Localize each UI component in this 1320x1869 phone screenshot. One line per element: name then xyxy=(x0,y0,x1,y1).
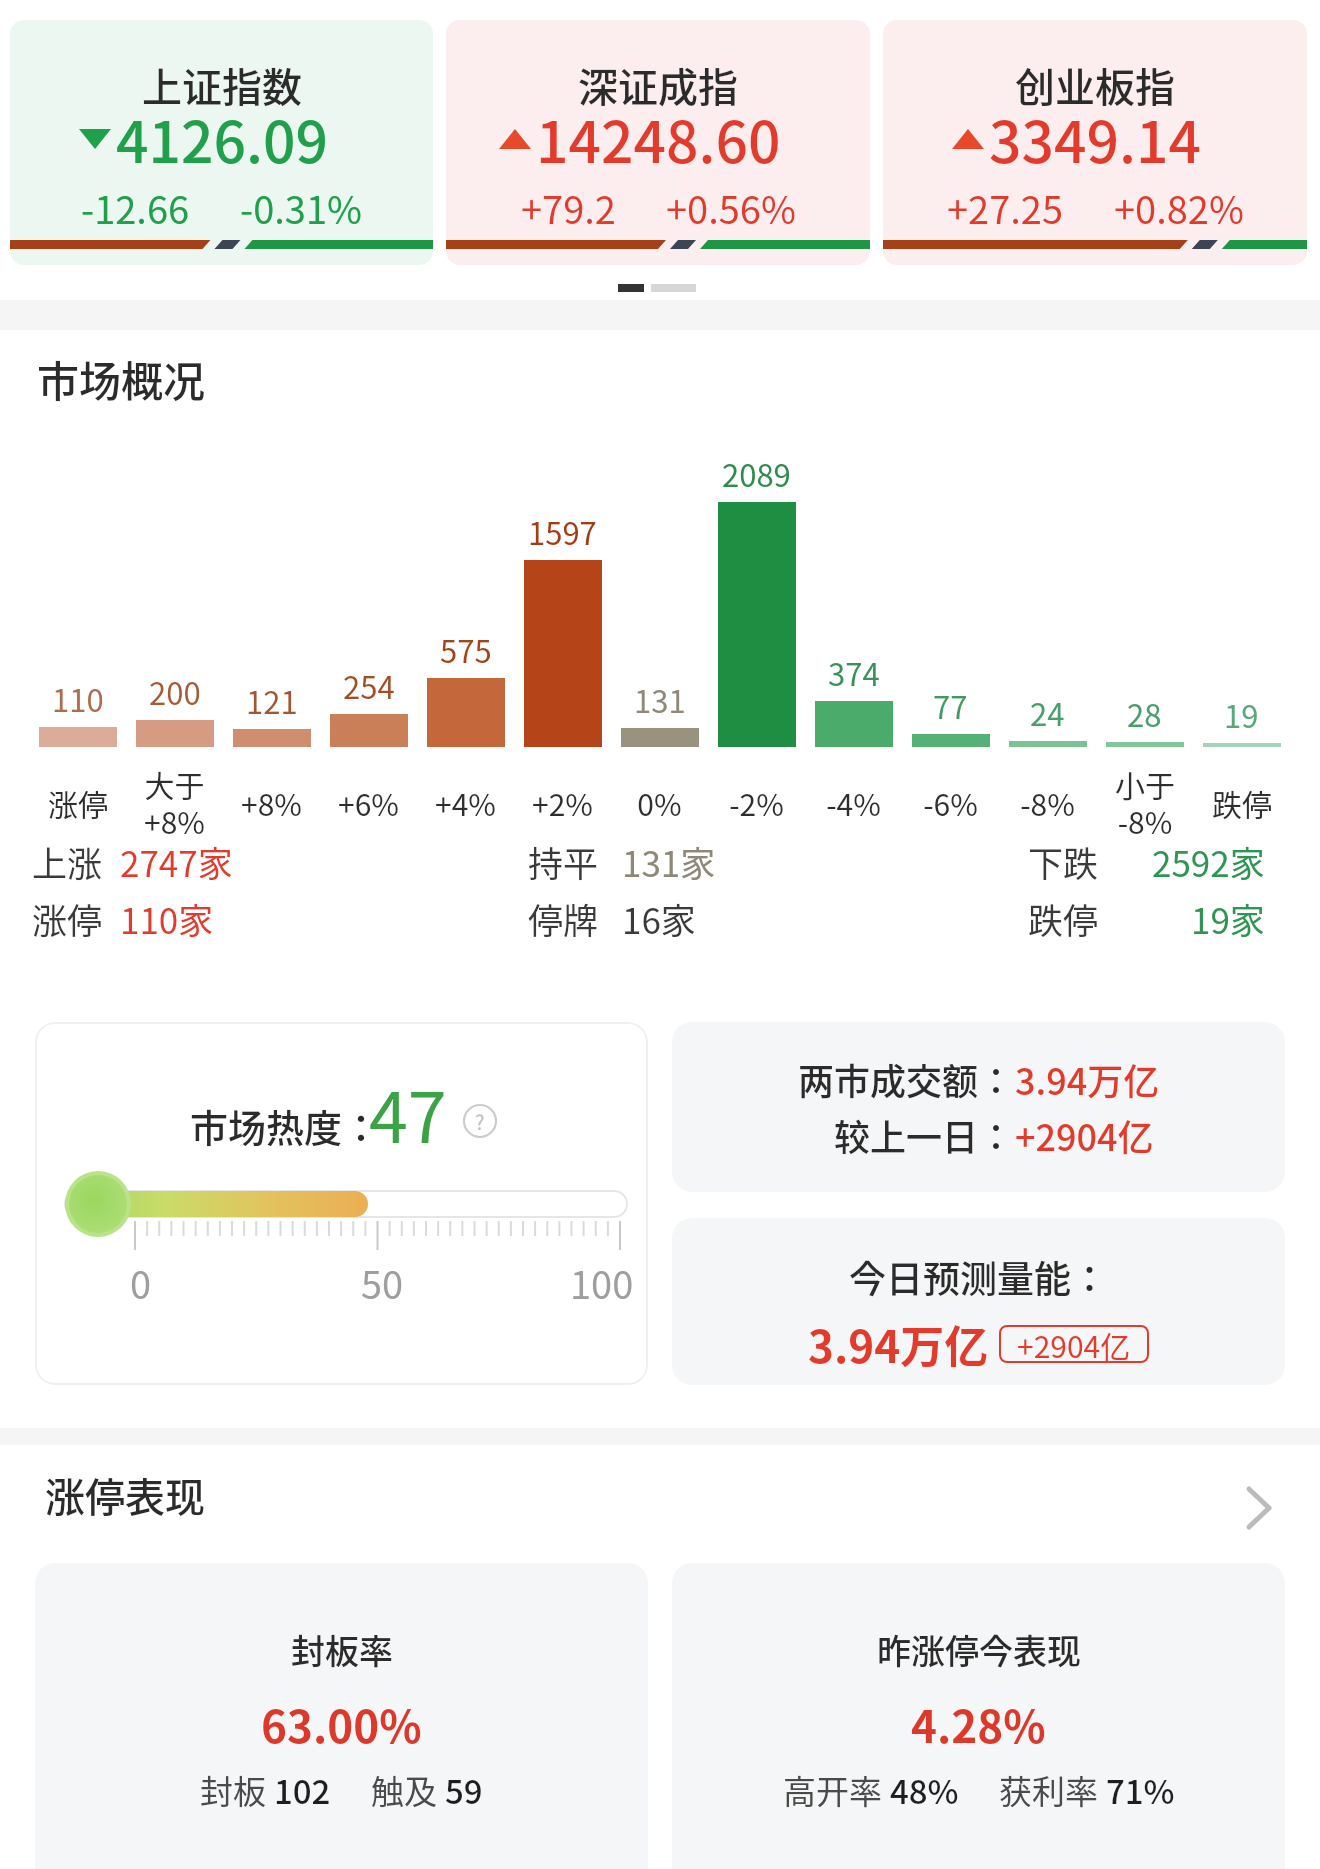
staticText: 77 xyxy=(933,683,968,728)
staticText: 创业板指 xyxy=(1015,56,1175,114)
staticText: 今日预测量能： xyxy=(849,1250,1108,1304)
staticText: -2% xyxy=(729,781,784,824)
staticText: ? xyxy=(475,1107,485,1136)
staticText: 121 xyxy=(246,678,298,723)
staticText: 63.00% xyxy=(261,1692,422,1756)
staticText: 昨涨停今表现 xyxy=(877,1625,1081,1674)
staticText: 14248.60 xyxy=(536,97,781,180)
staticText: 2747家 xyxy=(120,836,233,887)
staticText: 100 xyxy=(570,1255,634,1310)
staticText: 深证成指 xyxy=(578,56,738,114)
staticText: 2592家 xyxy=(1152,836,1265,887)
button[interactable] xyxy=(35,1022,648,1385)
staticText: 较上一日： xyxy=(834,1109,1015,1161)
staticText: +8% xyxy=(241,781,302,824)
button[interactable]: 涨停表现 xyxy=(0,1460,1320,1530)
staticText: 374 xyxy=(828,650,880,695)
staticText: 24 xyxy=(1030,690,1065,735)
staticText: 200 xyxy=(149,669,201,714)
staticText: 两市成交额： xyxy=(798,1053,1015,1105)
staticText: 高开率 xyxy=(783,1766,890,1814)
staticText: 4126.09 xyxy=(116,97,328,180)
staticText: 1597 xyxy=(528,509,597,554)
staticText: 涨停 xyxy=(48,781,108,824)
staticText: 0 xyxy=(130,1255,152,1310)
staticText: 市场概况 xyxy=(37,348,206,409)
staticText: +2904亿 xyxy=(1017,1323,1131,1361)
staticText: 2089 xyxy=(722,451,791,496)
staticText: +27.25 xyxy=(947,180,1064,235)
staticText: 131 xyxy=(634,677,686,722)
staticText: 跌停 xyxy=(1028,893,1099,944)
staticText: +2% xyxy=(532,781,593,824)
staticText: +6% xyxy=(338,781,399,824)
staticText: 3.94万亿 xyxy=(1015,1053,1160,1105)
staticText: 3.94万亿 xyxy=(808,1312,989,1376)
staticText: 4.28% xyxy=(911,1692,1046,1756)
button[interactable]: 昨涨停今表现 xyxy=(672,1563,1285,1869)
staticText: 下跌 xyxy=(1028,836,1099,887)
staticText: 102 xyxy=(274,1766,331,1814)
staticText: 跌停 xyxy=(1212,781,1272,824)
staticText: -8% xyxy=(1020,781,1075,824)
staticText: 19 xyxy=(1224,692,1259,737)
staticText: 获利率 xyxy=(999,1766,1106,1814)
button[interactable]: 创业板指 xyxy=(883,20,1307,265)
staticText: 110家 xyxy=(120,893,214,944)
staticText: +0.56% xyxy=(666,180,796,235)
staticText: 0% xyxy=(637,781,682,824)
staticText: 110 xyxy=(52,676,104,721)
staticText: 上证指数 xyxy=(142,56,302,114)
staticText: 涨停 xyxy=(32,893,103,944)
button[interactable]: 上证指数 xyxy=(10,20,433,265)
staticText: 小于 -8% xyxy=(1115,762,1175,842)
staticText: 48% xyxy=(890,1766,959,1814)
staticText: 大于 +8% xyxy=(144,762,205,842)
staticText: 19家 xyxy=(1191,893,1265,944)
staticText: 16家 xyxy=(622,893,696,944)
staticText: +0.82% xyxy=(1114,180,1244,235)
staticText: +2904亿 xyxy=(1015,1109,1154,1161)
staticText: -6% xyxy=(923,781,978,824)
staticText: -4% xyxy=(826,781,881,824)
staticText: 575 xyxy=(440,627,492,672)
staticText: 131家 xyxy=(622,836,716,887)
staticText: +79.2 xyxy=(521,180,616,235)
staticText: 254 xyxy=(343,663,395,708)
staticText: 市场热度： xyxy=(190,1098,381,1153)
staticText: 封板 xyxy=(200,1766,274,1814)
staticText: 封板率 xyxy=(291,1625,393,1674)
staticText: 59 xyxy=(445,1766,483,1814)
staticText: 触及 xyxy=(371,1766,445,1814)
button[interactable]: 深证成指 xyxy=(446,20,870,265)
staticText: +4% xyxy=(435,781,496,824)
staticText: 50 xyxy=(361,1255,404,1310)
staticText: 停牌 xyxy=(528,893,599,944)
button[interactable]: 封板率 xyxy=(35,1563,648,1869)
staticText: -12.66 xyxy=(81,180,190,235)
staticText: 上涨 xyxy=(32,836,103,887)
staticText: 持平 xyxy=(528,836,599,887)
staticText: 71% xyxy=(1106,1766,1175,1814)
staticText: 28 xyxy=(1127,691,1162,736)
staticText: 3349.14 xyxy=(989,97,1201,180)
button[interactable]: 两市成交额： xyxy=(672,1022,1285,1192)
button[interactable]: 今日预测量能： xyxy=(672,1218,1285,1385)
staticText: 涨停表现 xyxy=(45,1466,205,1524)
staticText: -0.31% xyxy=(240,180,363,235)
staticText: 47 xyxy=(369,1062,447,1163)
